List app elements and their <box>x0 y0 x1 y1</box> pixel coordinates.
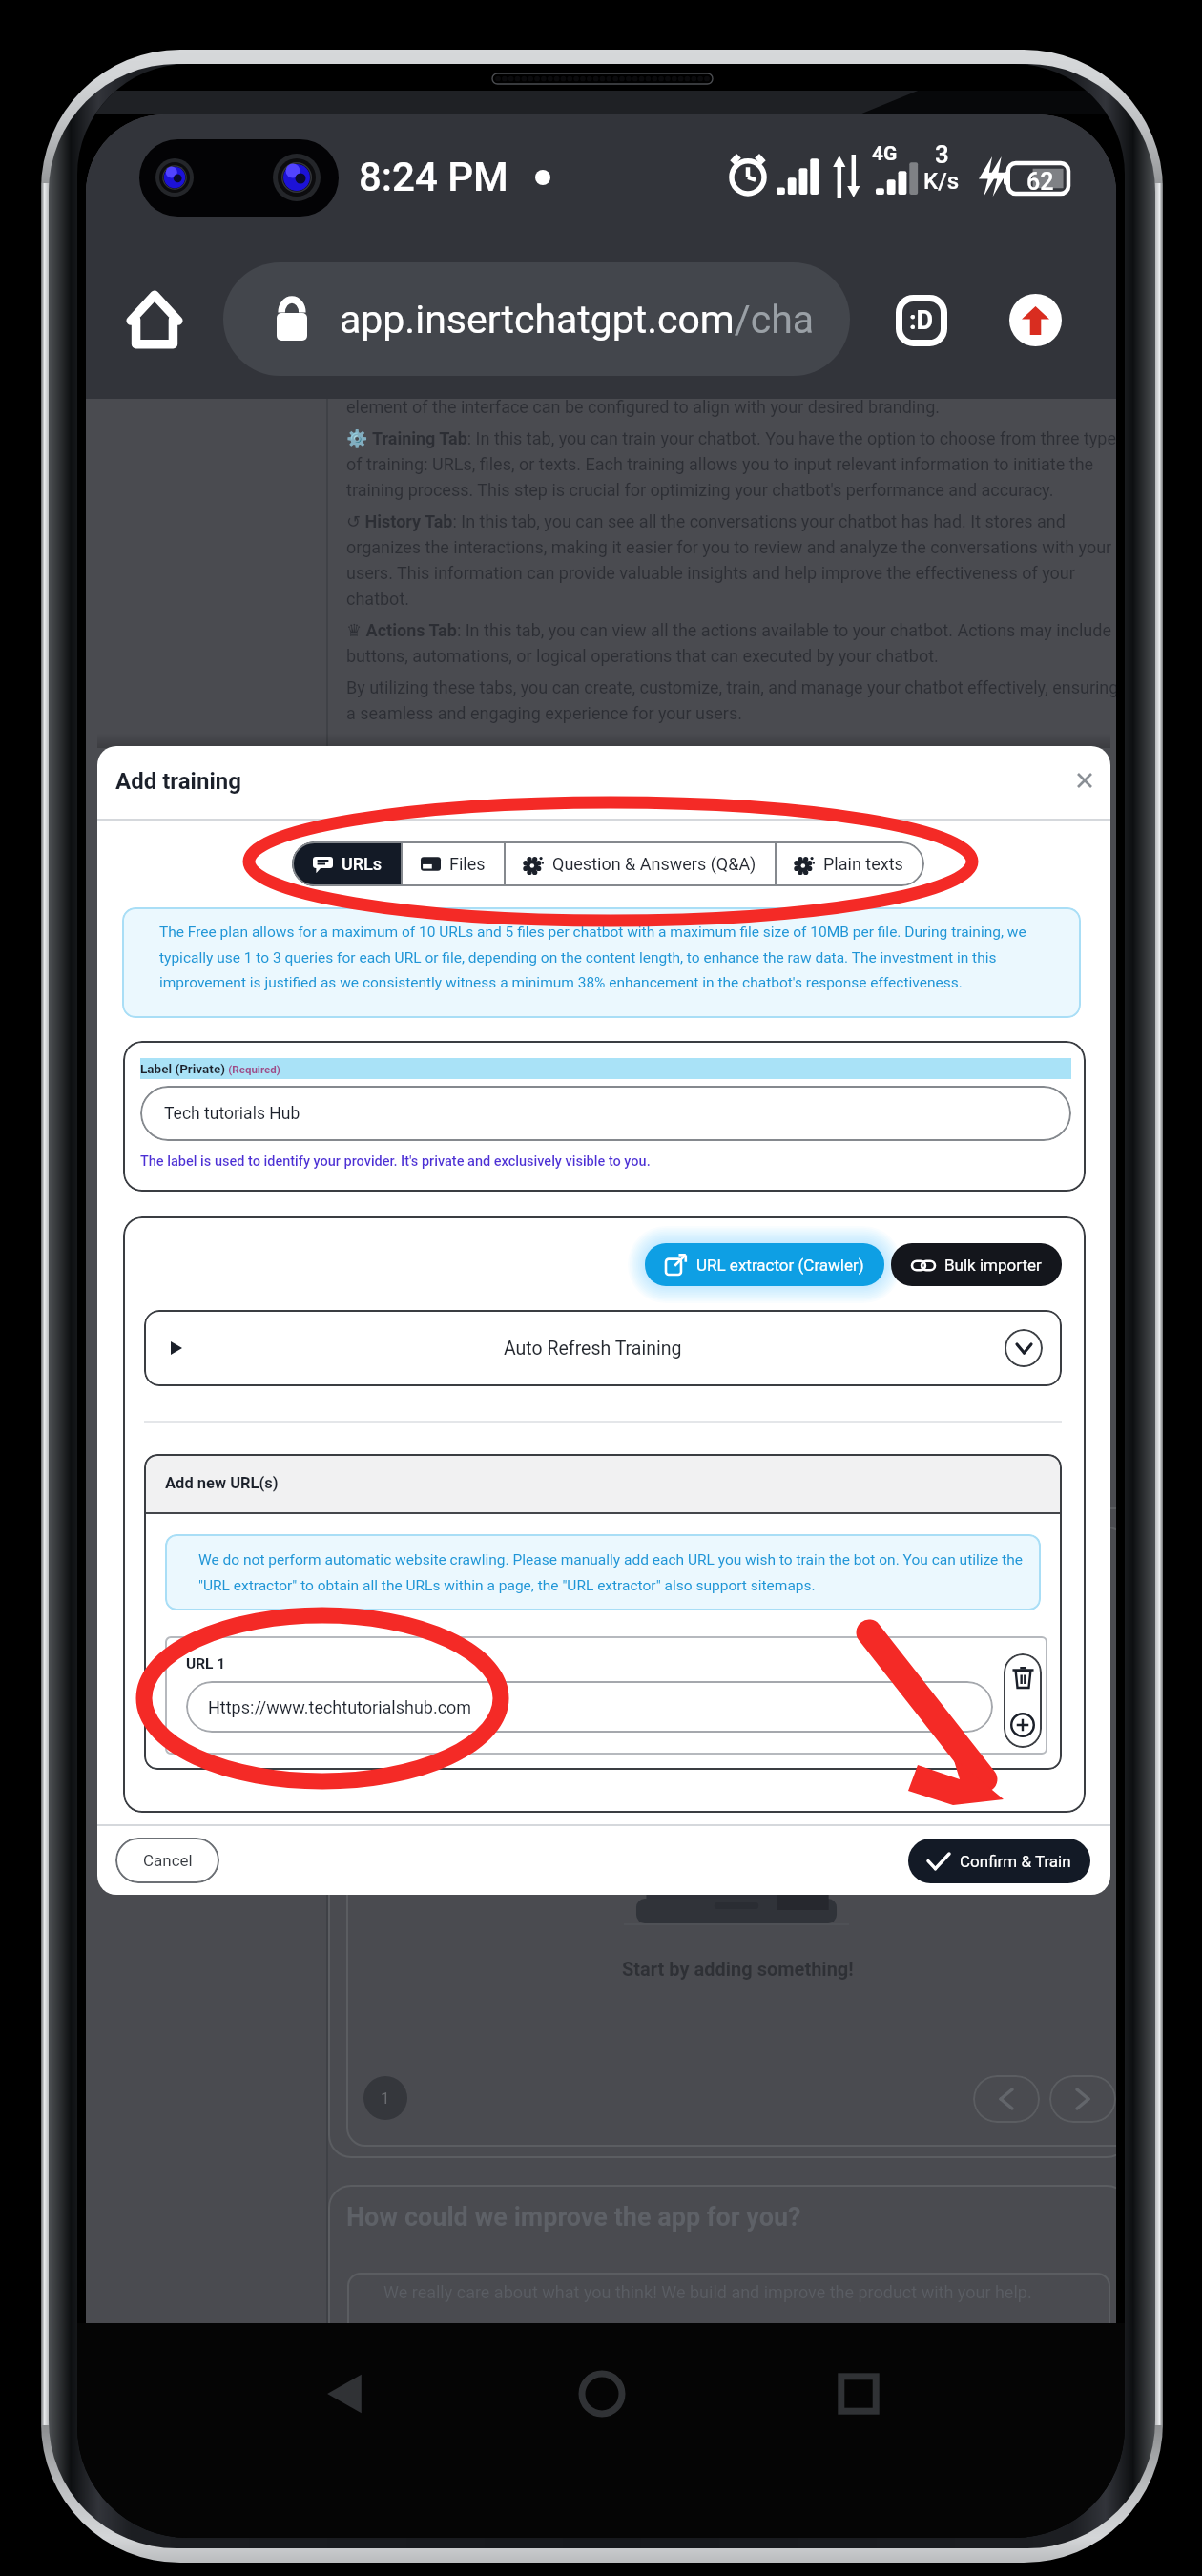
button[interactable]: app.insertchatgpt.com/cha <box>223 262 850 376</box>
button[interactable]: URLs <box>292 841 401 886</box>
staticText: Add training <box>115 768 241 795</box>
button[interactable]: URL extractor (Crawler) <box>645 1243 884 1286</box>
staticText: Https://www.techtutorialshub.com <box>208 1697 472 1717</box>
button[interactable]: Home <box>569 2360 635 2427</box>
staticText: 1 <box>381 2088 390 2108</box>
staticText: 62 <box>1026 168 1054 196</box>
staticText: Question & Answers (Q&A) <box>552 854 756 874</box>
button[interactable]: Files <box>403 841 504 886</box>
staticText: Plain texts <box>823 854 903 874</box>
staticText: The label is used to identify your provi… <box>140 1153 651 1170</box>
staticText: We do not perform automatic website craw… <box>198 1551 1040 1593</box>
staticText: K/s <box>923 168 960 195</box>
staticText: Bulk importer <box>944 1256 1042 1275</box>
button[interactable]: Auto Refresh Training <box>144 1310 1062 1386</box>
staticText: Confirm & Train <box>960 1852 1071 1871</box>
staticText: Auto Refresh Training <box>504 1338 682 1360</box>
staticText: 3 <box>935 140 949 169</box>
staticText: URLs <box>342 854 383 874</box>
button[interactable]: Back <box>312 2360 379 2427</box>
button[interactable]: Add URL <box>1004 1701 1042 1748</box>
staticText: :D <box>909 305 934 336</box>
button[interactable]: Confirm & Train <box>908 1839 1090 1883</box>
button[interactable]: Previous page <box>973 2075 1040 2123</box>
staticText: Cancel <box>143 1851 193 1870</box>
staticText: By utilizing these tabs, you can create,… <box>346 677 1116 723</box>
staticText: URL 1 <box>186 1655 226 1672</box>
staticText: The Free plan allows for a maximum of 10… <box>159 924 1039 990</box>
staticText: Files <box>449 854 486 874</box>
button[interactable]: Home <box>121 286 188 353</box>
button[interactable]: Scroll to top <box>1009 294 1062 346</box>
staticText: ⚙ Training Tab: In this tab, you can tra… <box>346 428 1116 500</box>
staticText: 4G <box>872 142 898 166</box>
staticText: Start by adding something! <box>622 1958 854 1980</box>
button[interactable]: Next page <box>1049 2075 1116 2123</box>
button[interactable]: Delete URL <box>1004 1653 1042 1700</box>
button[interactable]: Cancel <box>115 1838 219 1883</box>
staticText: How could we improve the app for you? <box>346 2202 801 2233</box>
staticText: Label (Private) (Required) <box>140 1061 280 1076</box>
button[interactable]: Bulk importer <box>891 1243 1062 1286</box>
staticText: element of the interface can be configur… <box>346 397 940 417</box>
staticText: ♛ Actions Tab: In this tab, you can view… <box>346 620 1116 666</box>
staticText: Add new URL(s) <box>165 1474 279 1492</box>
staticText: ↺ History Tab: In this tab, you can see … <box>346 511 1116 609</box>
staticText: app.insertchatgpt.com/cha <box>340 297 815 343</box>
button[interactable]: Tabs <box>896 295 947 346</box>
staticText: Tech tutorials Hub <box>164 1104 300 1124</box>
button[interactable]: Question & Answers (Q&A) <box>506 841 775 886</box>
staticText: We really care about what you think! We … <box>383 2282 1032 2302</box>
button[interactable]: Plain texts <box>777 841 924 886</box>
button[interactable]: Close <box>1071 767 1098 794</box>
button[interactable]: Recents <box>825 2360 892 2427</box>
button[interactable]: 1 <box>363 2076 407 2120</box>
staticText: 8:24 PM <box>359 154 508 200</box>
staticText: URL extractor (Crawler) <box>696 1256 864 1275</box>
